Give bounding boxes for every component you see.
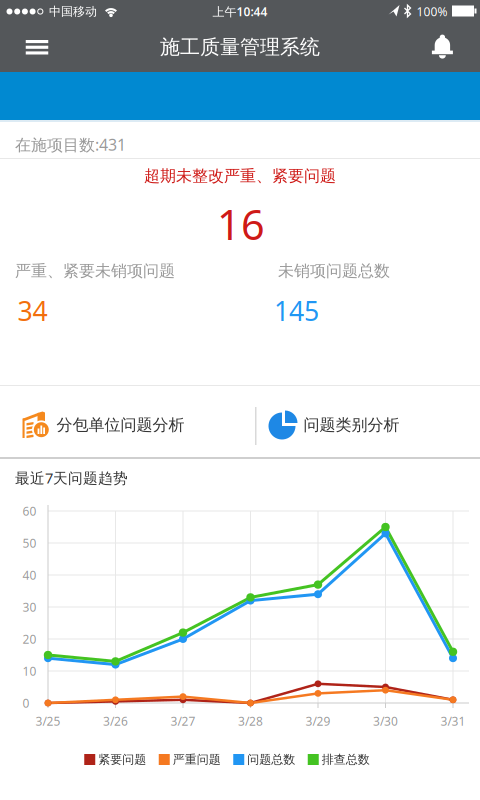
staticText: 上午10:44 [212,3,267,19]
staticText: 30 [22,599,36,615]
staticText: 中国移动 [49,4,97,19]
button[interactable]: 问题类别分析 [256,386,480,457]
staticText: 3/29 [305,713,330,729]
staticText: 严重问题 [173,752,221,767]
staticText: 16 [217,197,265,251]
button[interactable] [15,27,59,67]
staticText: 34 [17,293,47,328]
staticText: 145 [274,293,319,328]
staticText: 3/27 [170,713,195,729]
staticText: 50 [22,535,36,551]
staticText: 3/25 [35,713,60,729]
staticText: 最近7天问题趋势 [15,468,128,487]
staticText: 20 [22,631,36,647]
staticText: 施工质量管理系统 [160,35,320,59]
staticText: 严重、紧要未销项问题 [15,261,175,281]
staticText: 100% [416,3,447,19]
staticText: 0 [22,695,29,711]
staticText: 40 [22,567,36,583]
staticText: 3/31 [440,713,465,729]
button[interactable]: 分包单位问题分析 [0,386,255,457]
staticText: 问题类别分析 [303,415,399,435]
staticText: 未销项问题总数 [278,261,390,281]
staticText: 问题总数 [247,752,295,767]
staticText: 3/30 [373,713,398,729]
staticText: 超期未整改严重、紧要问题 [144,166,336,186]
staticText: 10 [22,663,36,679]
staticText: 分包单位问题分析 [56,415,184,435]
staticText: 紧要问题 [98,752,146,767]
staticText: 3/28 [238,713,263,729]
staticText: 3/26 [103,713,128,729]
staticText: 在施项目数:431 [15,134,126,155]
staticText: 排查总数 [322,752,370,767]
button[interactable] [426,33,460,61]
staticText: 60 [22,503,36,519]
